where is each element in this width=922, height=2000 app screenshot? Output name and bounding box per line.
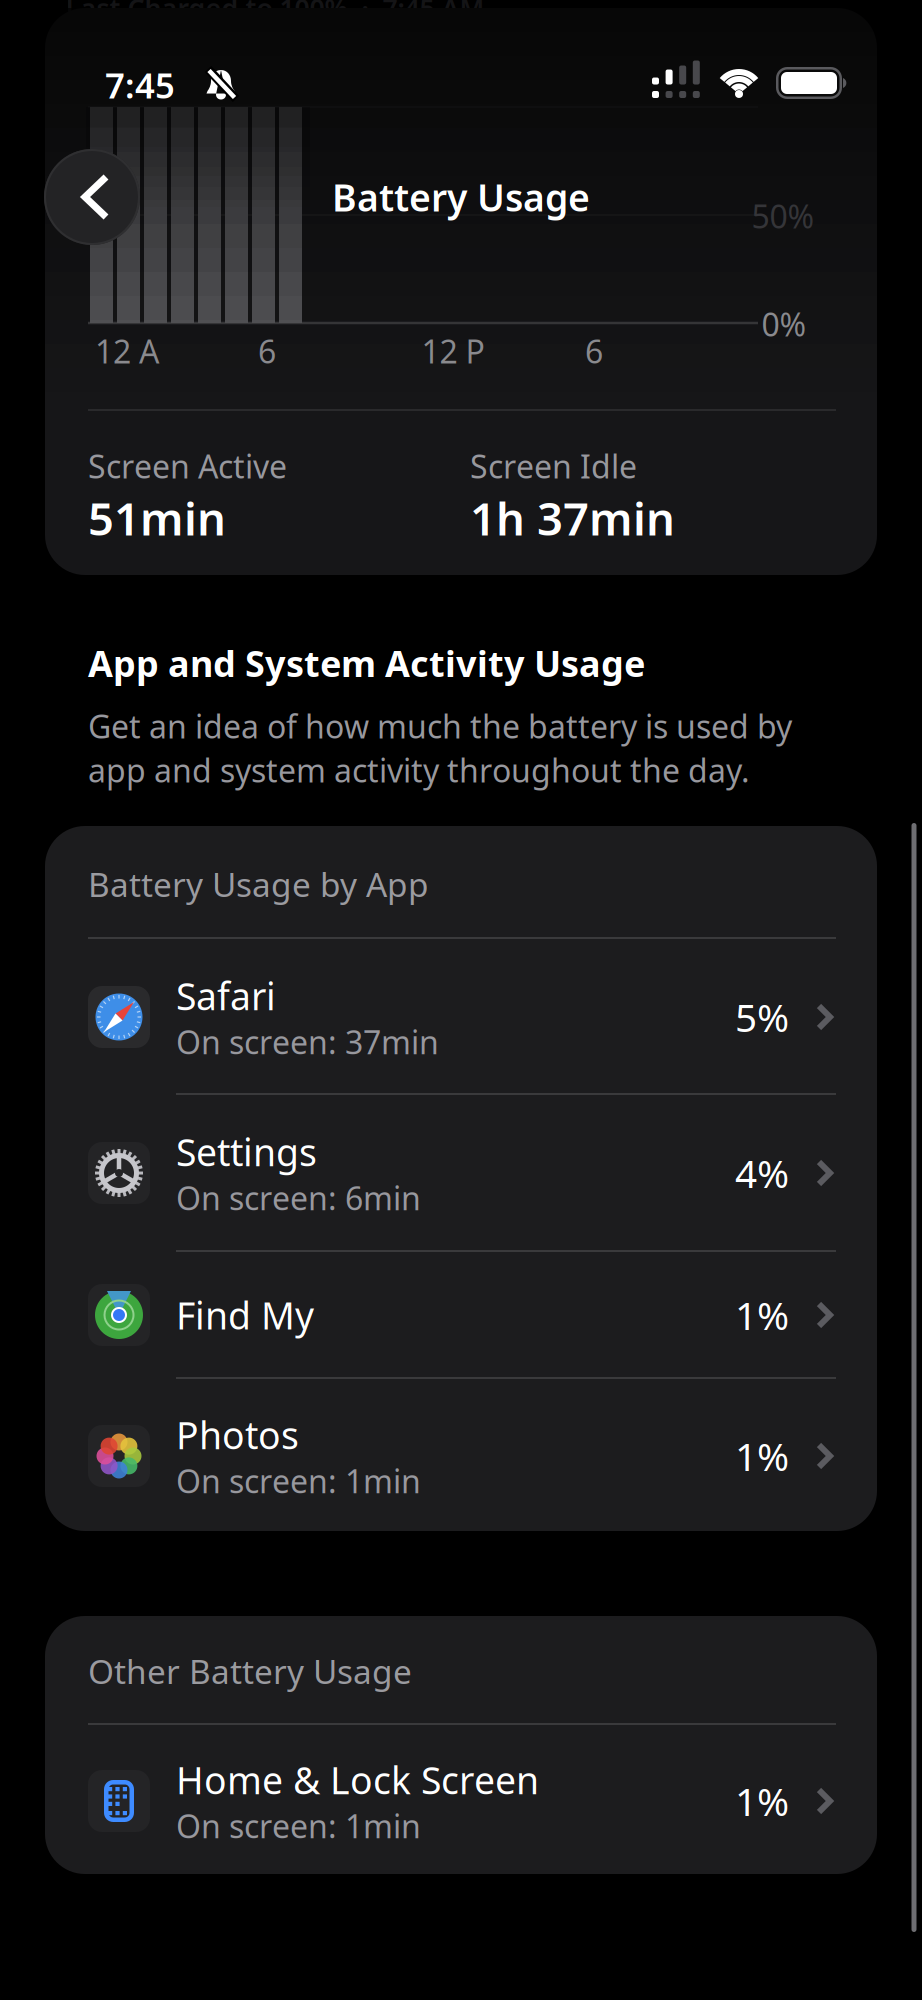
staticText: Settings	[176, 1127, 317, 1177]
staticText: Get an idea of how much the battery is u…	[88, 705, 792, 747]
staticText: 1h 37min	[470, 488, 675, 548]
staticText: 50%	[751, 195, 814, 237]
button[interactable]: Back	[44, 149, 140, 245]
staticText: Screen Idle	[470, 445, 637, 487]
staticText: 6	[258, 330, 276, 372]
button[interactable]: Home & Lock Screen	[45, 1726, 877, 1876]
staticText: 7:45	[105, 62, 175, 108]
staticText: 6	[585, 330, 603, 372]
staticText: Find My	[176, 1290, 314, 1340]
staticText: Photos	[176, 1410, 299, 1460]
staticText: 12 P	[421, 330, 484, 372]
staticText: 0%	[761, 303, 806, 345]
staticText: Screen Active	[88, 445, 287, 487]
button[interactable]: Safari	[45, 940, 877, 1094]
staticText: 1%	[735, 1430, 789, 1482]
staticText: App and System Activity Usage	[88, 639, 645, 687]
staticText: On screen: 1min	[176, 1459, 421, 1502]
staticText: On screen: 6min	[176, 1176, 421, 1219]
button[interactable]: Settings	[45, 1095, 877, 1250]
staticText: On screen: 1min	[176, 1804, 421, 1847]
staticText: 51min	[88, 488, 226, 548]
staticText: Safari	[176, 971, 276, 1021]
staticText: Home & Lock Screen	[176, 1755, 539, 1805]
staticText: 1%	[735, 1289, 789, 1341]
staticText: 4%	[735, 1147, 789, 1199]
button[interactable]: Photos	[45, 1380, 877, 1531]
staticText: Battery Usage	[332, 172, 590, 222]
staticText: Last Charged to 100% · 7:45 AM	[65, 0, 484, 26]
staticText: 12 A	[95, 330, 159, 372]
button[interactable]: Find My	[45, 1252, 877, 1377]
staticText: 1%	[735, 1775, 789, 1827]
staticText: app and system activity throughout the d…	[88, 749, 750, 791]
staticText: Battery Usage by App	[88, 862, 429, 906]
staticText: 5%	[735, 991, 789, 1043]
staticText: On screen: 37min	[176, 1020, 439, 1063]
staticText: Other Battery Usage	[88, 1649, 412, 1693]
